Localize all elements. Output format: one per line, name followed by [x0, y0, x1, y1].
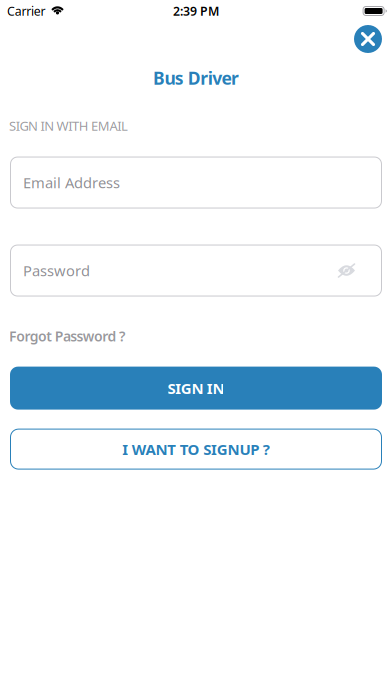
button[interactable]: Show password: [337, 263, 356, 277]
staticText: Carrier: [7, 3, 45, 19]
textField[interactable]: Email Address: [10, 156, 382, 208]
button[interactable]: Forgot Password ?: [9, 326, 125, 346]
staticText: I WANT TO SIGNUP ?: [122, 439, 270, 459]
staticText: Password: [23, 260, 90, 280]
button[interactable]: Close: [354, 25, 382, 53]
staticText: Email Address: [23, 172, 120, 192]
button[interactable]: I WANT TO SIGNUP ?: [10, 429, 382, 470]
button[interactable]: SIGN IN: [10, 367, 382, 410]
staticText: 2:39 PM: [173, 3, 219, 19]
staticText: SIGN IN WITH EMAIL: [9, 117, 128, 134]
staticText: SIGN IN: [167, 378, 224, 398]
staticText: Bus Driver: [153, 66, 239, 90]
secureTextField[interactable]: Password: [10, 244, 382, 296]
staticText: Forgot Password ?: [9, 326, 125, 346]
